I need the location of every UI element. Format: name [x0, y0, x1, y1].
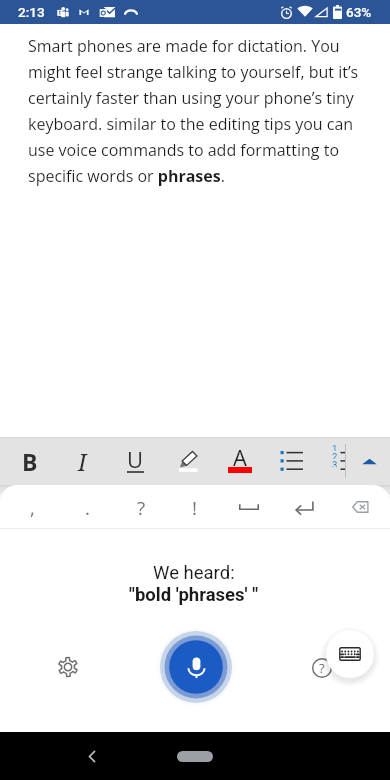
staticText: 1 — [332, 443, 338, 451]
staticText: 2:13 — [18, 4, 45, 20]
staticText: 3 — [332, 459, 338, 467]
staticText: ? — [137, 495, 146, 521]
button[interactable]: Keyboard — [326, 630, 374, 678]
button[interactable]: ? — [119, 485, 163, 529]
button[interactable]: Space — [227, 485, 271, 529]
button[interactable]: More options — [345, 437, 390, 485]
button[interactable]: Bold — [6, 437, 54, 485]
staticText: ! — [192, 495, 198, 521]
button[interactable]: Numbered list — [318, 437, 346, 485]
staticText: Smart phones are made for dictation. You… — [28, 35, 366, 187]
button[interactable]: Microphone — [156, 627, 236, 707]
staticText: 2 — [332, 451, 338, 459]
button[interactable]: Bulleted list — [271, 437, 315, 485]
button[interactable]: Settings — [54, 653, 82, 681]
staticText: 63% — [346, 4, 372, 20]
staticText: I — [78, 446, 87, 477]
button[interactable]: Highlight — [164, 437, 212, 485]
button[interactable]: Back — [76, 740, 108, 772]
staticText: "bold 'phrases' " — [129, 584, 259, 606]
staticText: A — [233, 442, 247, 472]
staticText: ? — [319, 659, 325, 677]
button[interactable]: Underline — [111, 437, 159, 485]
staticText: B — [22, 446, 38, 477]
button[interactable]: Home — [177, 751, 213, 762]
button[interactable]: Enter — [282, 485, 326, 529]
staticText: . — [85, 495, 90, 521]
button[interactable]: Font color — [216, 437, 264, 485]
button[interactable]: ! — [173, 485, 217, 529]
button[interactable]: Backspace — [336, 485, 380, 529]
staticText: , — [30, 495, 35, 521]
staticText: U — [127, 444, 144, 474]
button[interactable]: Help — [310, 656, 334, 680]
button[interactable]: . — [65, 485, 109, 529]
button[interactable]: Italic — [58, 437, 106, 485]
staticText: We heard: — [153, 562, 235, 584]
button[interactable]: , — [10, 485, 54, 529]
